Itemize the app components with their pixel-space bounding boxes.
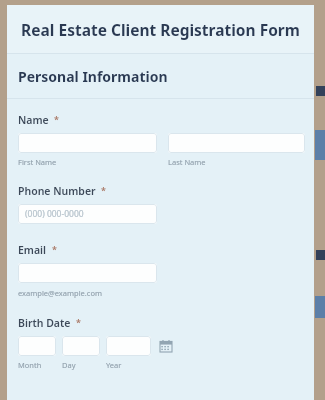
button[interactable]: Phone Number	[18, 204, 157, 224]
staticText: *	[101, 184, 106, 196]
button[interactable]: Year	[106, 336, 151, 356]
staticText: Last Name	[168, 157, 206, 167]
staticText: Name	[18, 113, 49, 127]
button[interactable]: Month	[18, 336, 56, 356]
staticText: Day	[62, 360, 76, 370]
button[interactable]: Pick date	[158, 338, 174, 354]
staticText: (000) 000-0000	[25, 208, 84, 220]
button[interactable]: Email	[18, 263, 157, 283]
button[interactable]: Day	[62, 336, 100, 356]
staticText: example@example.com	[18, 288, 102, 298]
staticText: Birth Date	[18, 316, 71, 330]
staticText: *	[76, 316, 81, 328]
staticText: First Name	[18, 157, 57, 167]
button[interactable]: Last Name	[168, 133, 305, 153]
staticText: Email	[18, 243, 47, 257]
staticText: Month	[18, 360, 42, 370]
staticText: Phone Number	[18, 184, 96, 198]
staticText: *	[52, 243, 57, 255]
staticText: Personal Information	[18, 67, 168, 86]
button[interactable]: First Name	[18, 133, 157, 153]
staticText: Real Estate Client Registration Form	[21, 19, 300, 40]
staticText: Year	[106, 360, 122, 370]
staticText: *	[54, 113, 59, 125]
